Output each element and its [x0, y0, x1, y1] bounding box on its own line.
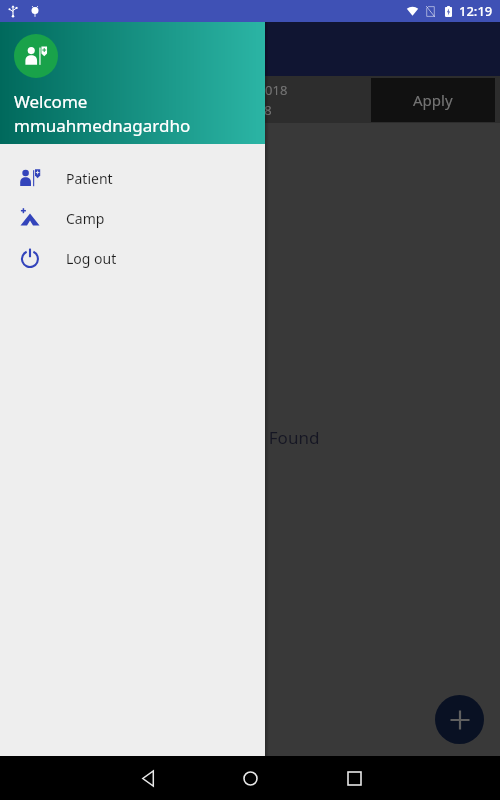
staticText: Patient: [66, 169, 113, 188]
button[interactable]: Back: [128, 758, 168, 798]
button[interactable]: Patient: [0, 158, 265, 198]
staticText: Apply: [413, 90, 453, 110]
staticText: Welcome: [14, 90, 88, 113]
staticText: Log out: [66, 249, 117, 268]
button[interactable]: Apply: [371, 78, 495, 122]
staticText: 12:19: [459, 2, 493, 20]
staticText: 6-2018: [246, 81, 288, 99]
staticText: mmuahmednagardho: [14, 114, 191, 137]
button[interactable]: Log out: [0, 238, 265, 278]
button[interactable]: Camp: [0, 198, 265, 238]
staticText: 2:18: [246, 101, 272, 119]
button[interactable]: Home: [230, 758, 270, 798]
button[interactable]: Recents: [334, 758, 374, 798]
staticText: No Record Found: [181, 426, 320, 449]
staticText: Camp: [66, 209, 105, 228]
button[interactable]: Add: [435, 695, 484, 744]
